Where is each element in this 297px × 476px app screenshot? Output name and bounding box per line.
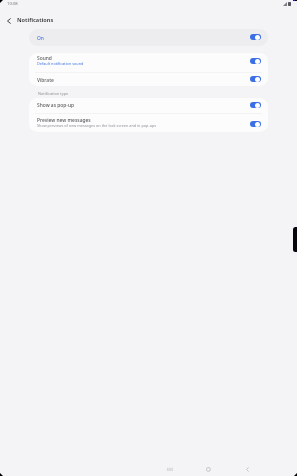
staticText: Show previews of new messages on the loc… <box>37 123 157 128</box>
button[interactable]: Preview new messages <box>29 114 268 132</box>
button[interactable]: Vibrate <box>29 73 268 86</box>
button[interactable]: Recents <box>166 466 180 476</box>
button[interactable]: Toggle <box>250 121 261 127</box>
button[interactable]: Show as pop-up <box>29 98 268 113</box>
staticText: Sound <box>37 55 52 61</box>
staticText: Notification type <box>38 91 69 96</box>
button[interactable]: On <box>29 29 268 46</box>
button[interactable]: Back <box>244 466 258 476</box>
staticText: On <box>37 35 44 41</box>
staticText: 10:08 <box>7 1 18 6</box>
button[interactable]: Back <box>2 14 15 27</box>
staticText: Show as pop-up <box>37 102 75 108</box>
button[interactable]: Home <box>205 466 219 476</box>
button[interactable]: Toggle <box>250 34 261 40</box>
staticText: Default notification sound <box>37 61 84 66</box>
staticText: Vibrate <box>37 77 54 83</box>
button[interactable]: Toggle <box>250 76 261 82</box>
staticText: Notifications <box>17 17 54 24</box>
button[interactable]: Edge panel <box>293 227 297 252</box>
staticText: Preview new messages <box>37 117 91 123</box>
button[interactable]: Toggle <box>250 102 261 108</box>
button[interactable]: Toggle <box>250 58 261 64</box>
button[interactable]: Sound <box>29 53 268 72</box>
